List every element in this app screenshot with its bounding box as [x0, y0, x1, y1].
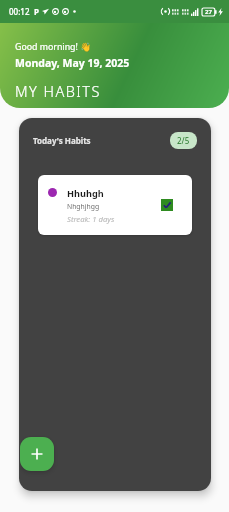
button[interactable]: Mark habit complete: [161, 199, 173, 211]
button[interactable]: Add habit: [20, 437, 54, 471]
staticText: 00:12: [9, 6, 30, 17]
staticText: Streak: 1 days: [67, 214, 115, 224]
button[interactable]: 2/5: [170, 132, 197, 149]
staticText: Monday, May 19, 2025: [15, 56, 130, 70]
staticText: P: [34, 6, 39, 17]
staticText: MY HABITS: [15, 81, 101, 101]
staticText: Hhuhgh: [67, 187, 104, 200]
staticText: Nhghjhgg: [67, 202, 100, 211]
staticText: 27: [205, 8, 212, 16]
staticText: Today's Habits: [33, 135, 91, 146]
staticText: Good morning! 👋: [15, 41, 92, 53]
staticText: 2/5: [177, 135, 190, 146]
button[interactable]: Hhuhgh: [38, 175, 192, 235]
